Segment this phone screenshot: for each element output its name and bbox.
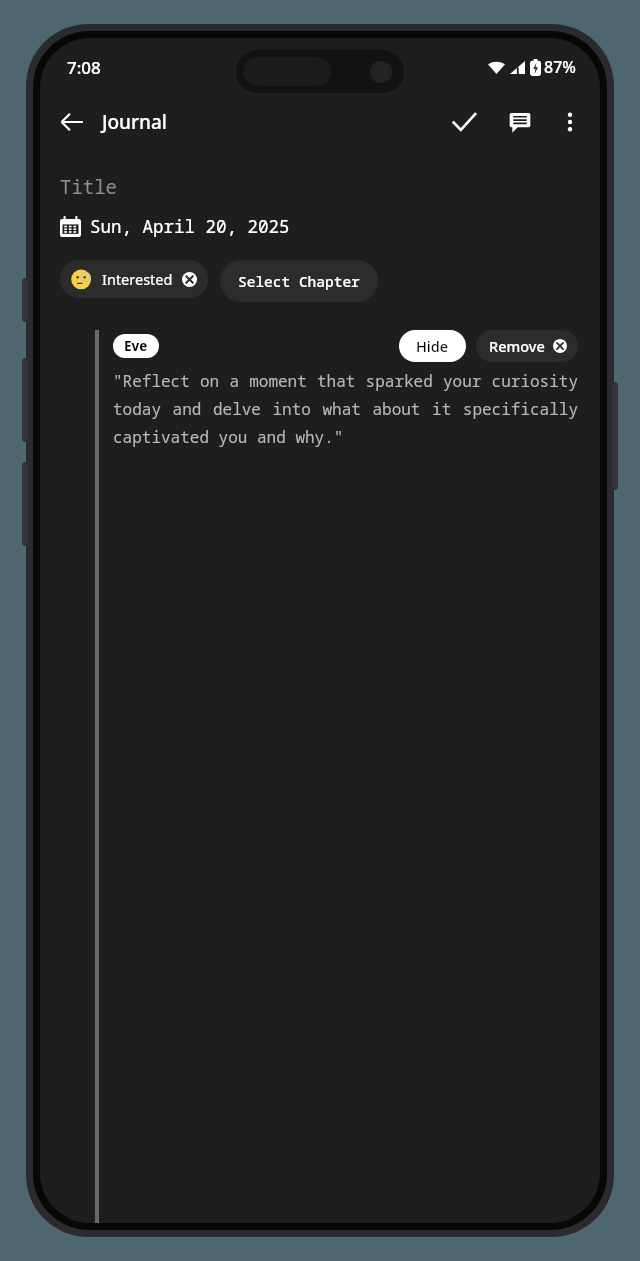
staticText: 87% [544, 56, 576, 78]
button[interactable]: Remove [476, 330, 578, 362]
staticText: Hide [416, 336, 449, 356]
button[interactable]: Chat [496, 98, 544, 146]
staticText: Eve [124, 337, 148, 355]
staticText: Sun, April 20, 2025 [90, 214, 290, 238]
button[interactable]: Save [440, 98, 488, 146]
staticText: Remove [489, 336, 545, 356]
button[interactable]: More options [548, 100, 592, 144]
staticText: 7:08 [67, 56, 101, 79]
button[interactable]: Select Chapter [220, 260, 378, 302]
staticText: Title [60, 174, 118, 200]
button[interactable]: Interested [60, 260, 208, 298]
staticText: Select Chapter [238, 271, 360, 291]
staticText: "Reflect on a moment that sparked your c… [113, 370, 578, 448]
button[interactable]: Hide [399, 330, 466, 362]
staticText: Journal [102, 109, 167, 135]
staticText: Interested [102, 269, 173, 289]
button[interactable]: Sun, April 20, 2025 [60, 214, 290, 238]
button[interactable]: Back [48, 98, 96, 146]
button[interactable]: Eve [113, 334, 159, 358]
